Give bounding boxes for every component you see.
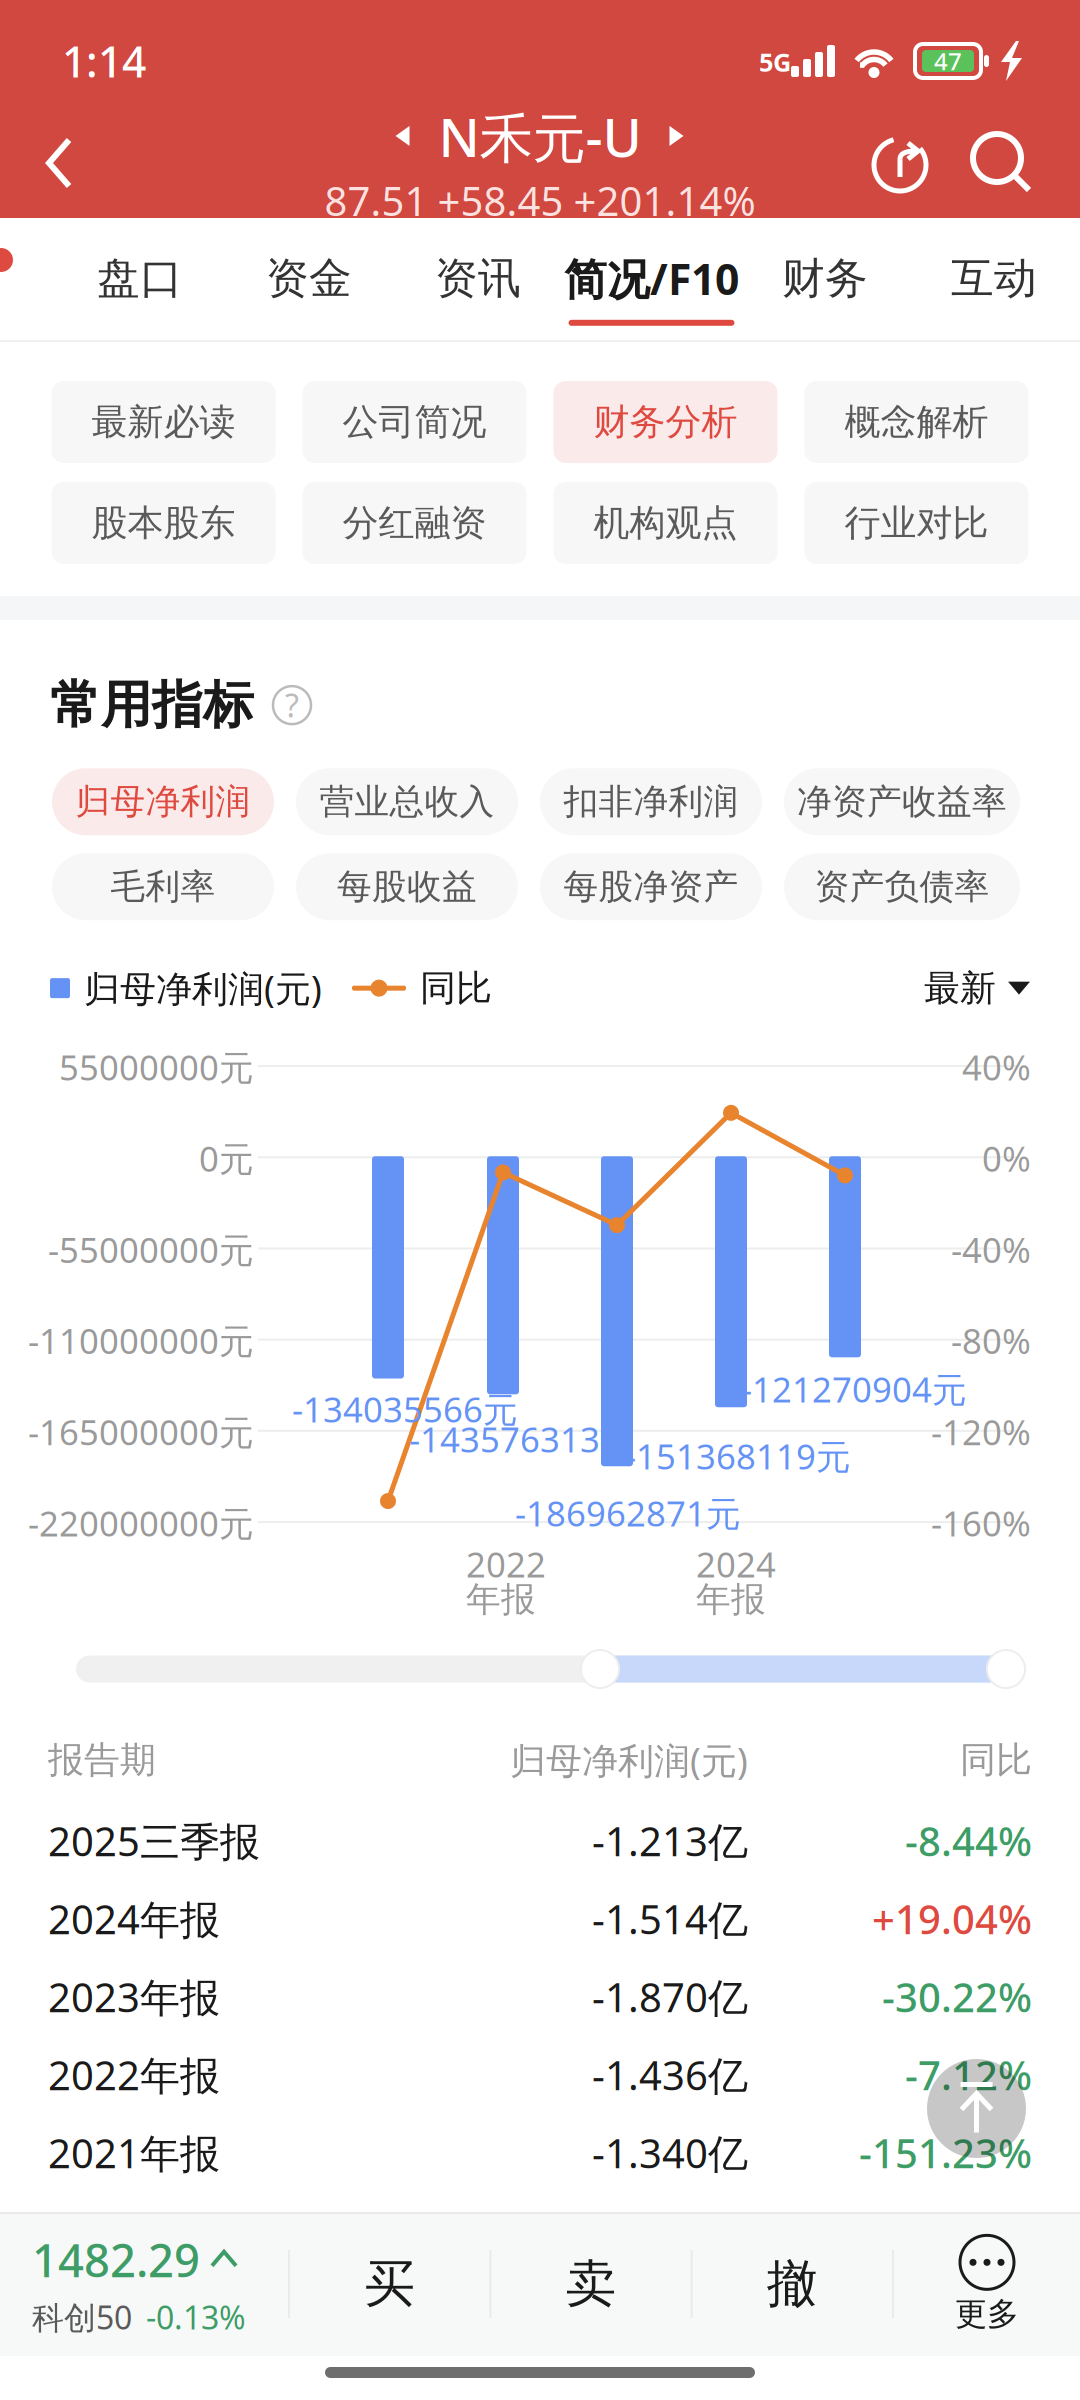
staticText: -0.13% (146, 2296, 246, 2338)
staticText: 撤 (767, 2253, 818, 2315)
staticText: -1.213亿 (592, 1814, 748, 1867)
button[interactable]: 2025三季报 (0, 1802, 1080, 1880)
staticText: 财务分析 (593, 400, 737, 444)
staticText: 归母净利润(元) (84, 964, 322, 1012)
staticText: 盘口 (97, 252, 183, 305)
staticText: 财务 (782, 252, 868, 305)
staticText: 0% (982, 1135, 1031, 1181)
button[interactable]: Scroll to top (927, 2059, 1026, 2158)
staticText: 5G (759, 45, 791, 79)
staticText: 最新必读 (91, 400, 235, 444)
staticText: 每股净资产 (563, 865, 738, 908)
staticText: 科创50 (32, 2296, 132, 2338)
staticText: -8.44% (905, 1814, 1032, 1867)
staticText: 同比 (420, 966, 492, 1010)
staticText: 行业对比 (844, 501, 988, 545)
button[interactable]: 归母净利润 (52, 768, 274, 835)
staticText: -1.340亿 (592, 2126, 748, 2179)
staticText: 常用指标 (50, 674, 254, 736)
staticText: -160% (931, 1500, 1031, 1546)
staticText: -165000000元 (28, 1409, 254, 1455)
staticText: 2025三季报 (48, 1814, 260, 1867)
staticText: 毛利率 (110, 865, 215, 908)
staticText: 互动 (951, 252, 1037, 305)
staticText: -110000000元 (28, 1318, 254, 1364)
staticText: -1.870亿 (592, 1970, 748, 2023)
button[interactable]: 净资产收益率 (784, 768, 1020, 835)
button[interactable]: 股本股东 (51, 482, 275, 564)
button[interactable]: 更多 (894, 2222, 1080, 2346)
button[interactable]: Search (936, 130, 1036, 198)
staticText: 概念解析 (844, 400, 988, 444)
button[interactable]: 营业总收入 (296, 768, 518, 835)
staticText: 年报 (466, 1578, 536, 1621)
staticText: 同比 (960, 1738, 1032, 1782)
staticText: -186962871元 (515, 1490, 741, 1536)
staticText: 年报 (696, 1578, 766, 1621)
staticText: 净资产收益率 (797, 780, 1007, 823)
button[interactable]: 简况/F10 (564, 228, 739, 344)
button[interactable]: 资讯 (395, 230, 561, 342)
staticText: 公司简况 (342, 400, 486, 444)
button[interactable]: 2021年报 (0, 2114, 1080, 2192)
button[interactable]: 资金 (226, 230, 392, 342)
staticText: 资产负债率 (814, 865, 989, 908)
button[interactable]: 每股收益 (296, 853, 518, 920)
button[interactable]: 2024年报 (0, 1880, 1080, 1958)
staticText: 最新 (924, 966, 996, 1010)
button[interactable]: 买 (290, 2222, 489, 2346)
staticText: N禾元-U (438, 101, 641, 172)
staticText: 扣非净利润 (563, 780, 738, 823)
staticText: 2024年报 (48, 1892, 220, 1945)
staticText: 简况/F10 (564, 250, 739, 307)
button[interactable]: 财务分析 (553, 381, 777, 463)
button[interactable]: Back (0, 114, 105, 214)
staticText: -121270904元 (741, 1366, 967, 1412)
staticText: 87.51 +58.45 +201.14% (324, 174, 755, 227)
button[interactable]: 分红融资 (302, 482, 526, 564)
button[interactable]: 最新 (924, 966, 1030, 1010)
staticText: 2024 (696, 1541, 776, 1587)
button[interactable]: 扣非净利润 (540, 768, 762, 835)
staticText: -40% (951, 1226, 1031, 1272)
staticText: 归母净利润 (75, 780, 250, 823)
button[interactable]: 每股净资产 (540, 853, 762, 920)
staticText: 机构观点 (593, 501, 737, 545)
staticText: 每股收益 (337, 865, 477, 908)
button[interactable]: 概念解析 (804, 381, 1028, 463)
staticText: -151.23% (859, 2126, 1032, 2179)
staticText: -143576313元 (409, 1416, 635, 1462)
staticText: -120% (931, 1409, 1031, 1455)
button[interactable]: 撤 (693, 2222, 892, 2346)
staticText: 营业总收入 (319, 780, 494, 823)
button[interactable]: 1482.29 (0, 2222, 288, 2346)
button[interactable]: 毛利率 (52, 853, 274, 920)
button[interactable]: 公司简况 (302, 381, 526, 463)
staticText: 报告期 (48, 1738, 156, 1782)
staticText: 2023年报 (48, 1970, 220, 2023)
staticText: 资讯 (435, 252, 521, 305)
staticText: +19.04% (872, 1892, 1032, 1945)
staticText: 55000000元 (59, 1044, 254, 1090)
staticText: 0元 (199, 1135, 254, 1181)
staticText: 更多 (955, 2294, 1019, 2334)
button[interactable]: Refresh (868, 130, 936, 198)
button[interactable]: 盘口 (57, 230, 223, 342)
staticText: 分红融资 (342, 501, 486, 545)
staticText: -1.436亿 (592, 2048, 748, 2101)
staticText: -7.12% (905, 2048, 1032, 2101)
button[interactable]: 卖 (491, 2222, 691, 2346)
staticText: 归母净利润(元) (510, 1736, 748, 1784)
button[interactable]: 行业对比 (804, 482, 1028, 564)
button[interactable]: 机构观点 (553, 482, 777, 564)
button[interactable]: 财务 (742, 230, 908, 342)
button[interactable]: 2022年报 (0, 2036, 1080, 2114)
button[interactable]: 2023年报 (0, 1958, 1080, 2036)
staticText: 股本股东 (91, 501, 235, 545)
staticText: ? (285, 684, 299, 726)
staticText: 2022年报 (48, 2048, 220, 2101)
button[interactable]: 互动 (911, 230, 1077, 342)
button[interactable]: 资产负债率 (784, 853, 1020, 920)
staticText: 卖 (565, 2253, 616, 2315)
button[interactable]: 最新必读 (51, 381, 275, 463)
